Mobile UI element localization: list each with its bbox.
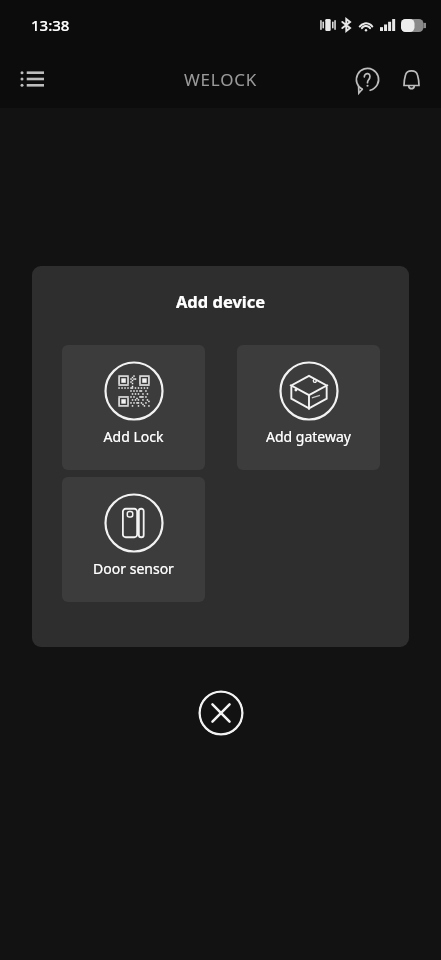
staticText: Add gateway	[237, 427, 380, 446]
staticText: 13:38	[31, 15, 70, 35]
button[interactable]: Menu	[10, 57, 54, 101]
button[interactable]: Door sensor	[62, 477, 205, 602]
button[interactable]: Notifications	[389, 57, 433, 101]
staticText: Door sensor	[62, 559, 205, 578]
button[interactable]: Close	[198, 690, 244, 736]
staticText: Add Lock	[62, 427, 205, 446]
button[interactable]: Help	[345, 57, 389, 101]
button[interactable]: Add Lock	[62, 345, 205, 470]
staticText: WELOCK	[184, 68, 258, 91]
staticText: Add device	[32, 290, 409, 312]
button[interactable]: Add gateway	[237, 345, 380, 470]
